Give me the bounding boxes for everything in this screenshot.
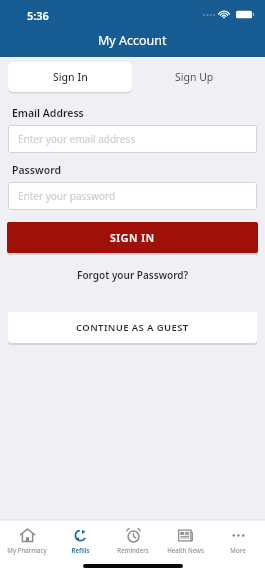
button[interactable]: My Pharmacy bbox=[1, 520, 53, 560]
button[interactable]: CONTINUE AS A GUEST bbox=[8, 312, 257, 343]
button[interactable]: Sign In bbox=[8, 62, 132, 92]
staticText: SIGN IN bbox=[110, 231, 155, 245]
staticText: My Pharmacy bbox=[7, 546, 47, 554]
button[interactable]: Enter your password bbox=[8, 182, 257, 210]
staticText: Sign In bbox=[53, 70, 88, 84]
button[interactable]: Sign Up bbox=[132, 62, 257, 92]
staticText: Health News bbox=[167, 546, 204, 554]
staticText: Refills bbox=[71, 546, 90, 554]
staticText: Email Address bbox=[12, 106, 84, 120]
staticText: Enter your password bbox=[18, 189, 116, 203]
button[interactable]: More bbox=[212, 520, 264, 560]
button[interactable]: Forgot your Password? bbox=[71, 266, 195, 284]
button[interactable]: SIGN IN bbox=[7, 222, 258, 253]
staticText: Sign Up bbox=[175, 70, 214, 84]
staticText: More bbox=[230, 546, 246, 554]
button[interactable]: Health News bbox=[159, 520, 211, 560]
button[interactable]: Reminders bbox=[107, 520, 159, 560]
staticText: My Account bbox=[98, 32, 167, 49]
staticText: Enter your email address bbox=[18, 132, 136, 146]
staticText: 5:36 bbox=[27, 8, 49, 23]
staticText: Password bbox=[12, 163, 62, 177]
staticText: Reminders bbox=[117, 546, 149, 554]
button[interactable]: Enter your email address bbox=[8, 125, 257, 153]
button[interactable]: Refills bbox=[54, 520, 106, 560]
staticText: CONTINUE AS A GUEST bbox=[76, 321, 189, 334]
staticText: Forgot your Password? bbox=[77, 268, 189, 282]
